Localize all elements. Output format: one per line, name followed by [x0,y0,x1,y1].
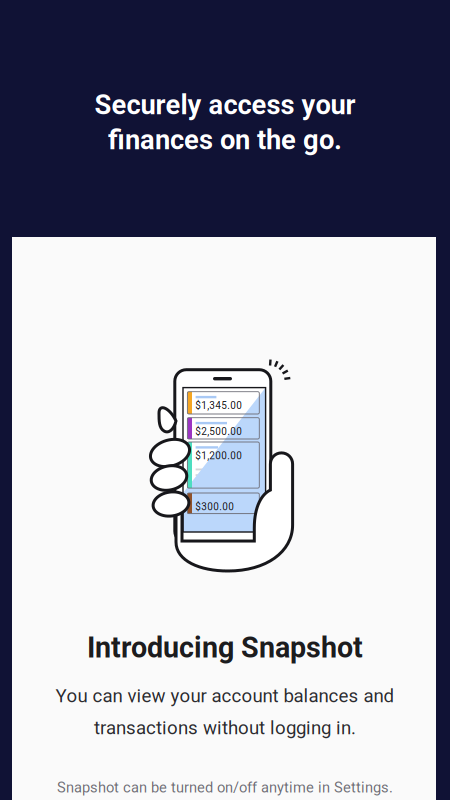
staticText: transactions without logging in. [94,717,356,739]
staticText: Securely access your [94,89,355,121]
staticText: $2,500.00 [195,426,242,437]
staticText: You can view your account balances and [55,685,394,707]
staticText: $1,200.00 [195,450,242,462]
staticText: $1,345.00 [195,400,242,411]
staticText: Snapshot can be turned on/off anytime in… [57,779,393,796]
staticText: $300.00 [195,501,234,513]
staticText: Introducing Snapshot [87,631,363,665]
staticText: finances on the go. [108,124,342,156]
